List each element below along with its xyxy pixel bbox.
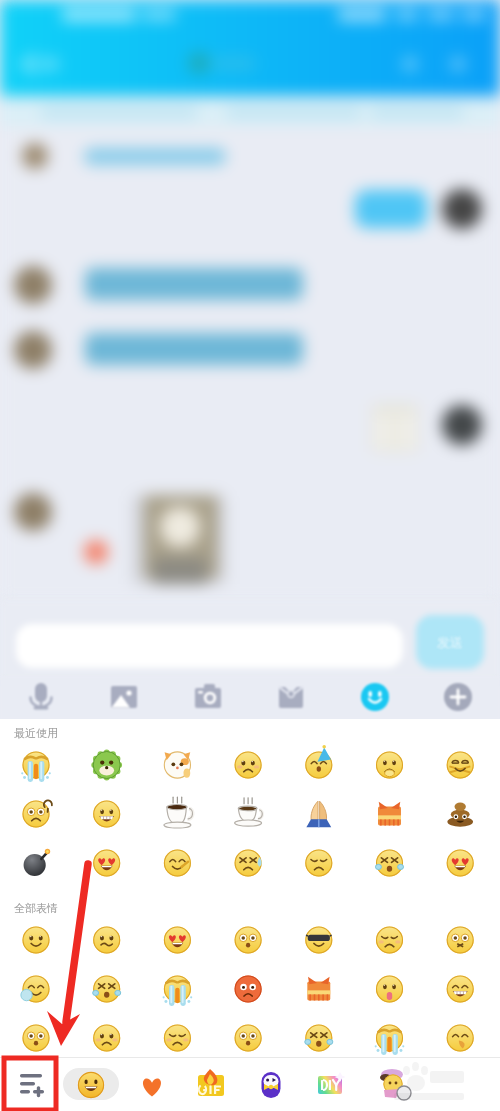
button[interactable]: DIY [311,1057,374,1111]
button[interactable]: Emoji [429,790,500,839]
button[interactable]: Emoji [144,790,216,839]
button[interactable]: Emoji [429,741,500,790]
button[interactable]: More [417,676,500,718]
button[interactable]: Emoji [216,839,287,888]
button[interactable]: Emoji [287,790,358,839]
button[interactable]: Emoji [0,741,72,790]
button[interactable]: Voice message [0,676,84,718]
button[interactable]: Emoji [287,916,358,965]
button[interactable]: Emoji [358,839,429,888]
button[interactable]: Emoji [72,1014,144,1057]
button[interactable]: Emoji [216,741,287,790]
button[interactable]: Sticker pack [374,1057,437,1111]
button[interactable]: Emoji [0,916,72,965]
button[interactable]: Emoji [72,790,144,839]
button[interactable]: Emoji [0,965,72,1014]
button[interactable]: Emoji [429,1014,500,1057]
button[interactable]: Emoji settings [0,1057,62,1111]
button[interactable]: Emoji [287,741,358,790]
button[interactable]: Emoji [429,916,500,965]
button[interactable]: Emoji [0,1014,72,1057]
button[interactable]: Emoji [144,1014,216,1057]
button[interactable]: GIF [186,1057,248,1111]
button[interactable]: Video [251,676,334,718]
button[interactable]: Emoji [358,1014,429,1057]
button[interactable]: Emoji keyboard [334,676,417,718]
button[interactable]: Send [414,613,485,671]
button[interactable]: Emoji [358,916,429,965]
button[interactable]: Emoji [358,790,429,839]
button[interactable]: Emoji [216,965,287,1014]
button[interactable]: More packs [437,1057,500,1111]
button[interactable]: Emoji [0,790,72,839]
button[interactable]: Emoji [62,1057,124,1111]
button[interactable]: Camera [168,676,251,718]
button[interactable]: Emoji [429,839,500,888]
button[interactable]: Emoji [287,839,358,888]
button[interactable]: Emoji [72,839,144,888]
button[interactable]: Emoji [144,741,216,790]
button[interactable]: Stickers [248,1057,311,1111]
button[interactable]: Emoji [216,916,287,965]
button[interactable]: Emoji [144,965,216,1014]
button[interactable]: Emoji [358,741,429,790]
button[interactable]: Emoji [0,839,72,888]
button[interactable]: Emoji [72,965,144,1014]
button[interactable]: Emoji [358,965,429,1014]
staticText: 全部表情 [14,901,58,915]
button[interactable]: Emoji [429,965,500,1014]
button[interactable]: Emoji [72,916,144,965]
staticText: 发送 [437,634,463,650]
button[interactable]: Photos [84,676,168,718]
button[interactable]: Emoji [144,916,216,965]
button[interactable]: Emoji [216,1014,287,1057]
button[interactable]: Message input [14,622,405,670]
button[interactable]: Emoji [216,790,287,839]
button[interactable]: Emoji [287,965,358,1014]
button[interactable]: Emoji [72,741,144,790]
button[interactable]: Favorites [124,1057,186,1111]
button[interactable]: Emoji [287,1014,358,1057]
button[interactable]: Emoji [144,839,216,888]
button[interactable]: Emoji [63,1068,119,1100]
staticText: 最近使用 [14,726,58,740]
